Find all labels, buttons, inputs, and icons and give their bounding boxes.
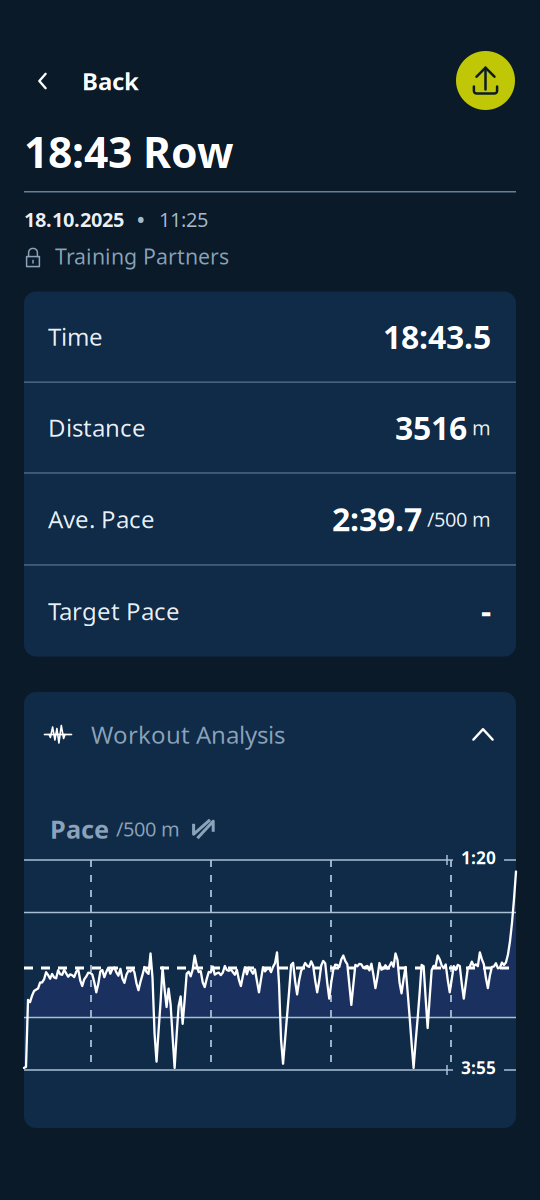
staticText: /500 m <box>427 506 491 532</box>
staticText: Workout Analysis <box>91 719 285 750</box>
button[interactable]: Time <box>24 291 516 381</box>
staticText: Back <box>82 65 139 97</box>
button[interactable]: Share <box>456 51 515 110</box>
staticText: - <box>481 590 491 632</box>
staticText: m <box>472 414 491 441</box>
staticText: Pace <box>50 812 109 846</box>
button[interactable]: Distance <box>24 383 516 472</box>
staticText: 3:55 <box>461 1056 496 1079</box>
staticText: 11:25 <box>159 206 208 233</box>
button[interactable]: Ave. Pace <box>24 474 516 564</box>
button[interactable]: Workout Analysis <box>24 692 516 777</box>
staticText: 2:39.7 <box>332 498 422 540</box>
staticText: • <box>137 206 145 233</box>
staticText: 18.10.2025 <box>24 206 124 233</box>
staticText: 18:43.5 <box>383 315 491 358</box>
button[interactable]: Back <box>24 56 155 106</box>
staticText: 18:43 Row <box>24 123 234 180</box>
staticText: Distance <box>48 412 146 443</box>
staticText: /500 m <box>116 815 180 842</box>
staticText: Ave. Pace <box>48 503 155 535</box>
button[interactable]: Training Partners <box>24 239 229 273</box>
staticText: 3516 <box>395 406 467 449</box>
staticText: Target Pace <box>48 595 180 627</box>
staticText: Time <box>48 321 103 352</box>
button[interactable]: Target Pace <box>24 566 516 656</box>
staticText: 1:20 <box>461 846 496 869</box>
staticText: Training Partners <box>55 242 229 270</box>
